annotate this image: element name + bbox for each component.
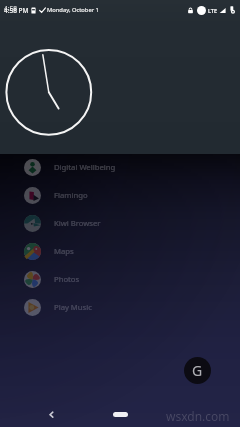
button[interactable]: Play Music (0, 293, 240, 321)
staticText: LTE (208, 7, 217, 14)
staticText: 4:58 (4, 4, 17, 13)
staticText: 4:58 PM (4, 6, 29, 15)
button[interactable]: Photos (0, 265, 240, 293)
staticText: Maps (54, 246, 74, 256)
staticText: Flamingo (54, 190, 88, 200)
button[interactable]: Maps (0, 237, 240, 265)
staticText: G (192, 361, 203, 380)
staticText: wsxdn.com (166, 408, 230, 424)
button[interactable]: Flamingo (0, 181, 240, 209)
staticText: Photos (54, 274, 80, 284)
staticText: Play Music (54, 302, 92, 312)
button[interactable]: Back (43, 406, 59, 422)
button[interactable]: Google Search (184, 357, 211, 384)
staticText: Digital Wellbeing (54, 162, 116, 172)
button[interactable]: Digital Wellbeing (0, 153, 240, 181)
staticText: Kiwi Browser (54, 218, 101, 228)
button[interactable]: Kiwi Browser (0, 209, 240, 237)
button[interactable]: Home (113, 412, 128, 417)
button[interactable]: Clock widget (0, 43, 98, 141)
staticText: Monday, October 1 (47, 6, 99, 14)
